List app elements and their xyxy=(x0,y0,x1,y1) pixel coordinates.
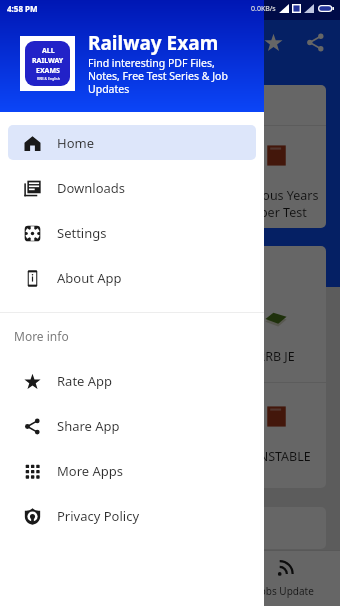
button[interactable]: Previous Years Paper Test xyxy=(10,85,326,228)
staticText: Home xyxy=(57,134,94,152)
staticText: Rate App xyxy=(57,372,113,390)
button[interactable]: Share xyxy=(294,21,336,63)
button[interactable]: Rate xyxy=(252,21,294,63)
button[interactable]: Home xyxy=(8,125,256,160)
staticText: EXAMS xyxy=(36,66,60,76)
staticText: 4:58 PM xyxy=(7,3,38,14)
staticText: RRB JE xyxy=(257,348,295,365)
staticText: Downloads xyxy=(57,179,126,197)
staticText: More Apps xyxy=(57,462,124,480)
button[interactable]: Rate App xyxy=(8,363,256,398)
button[interactable]: Settings xyxy=(8,215,256,250)
staticText: 0.0KB/s xyxy=(251,4,276,14)
staticText: More info xyxy=(14,328,69,344)
button[interactable]: Downloads xyxy=(8,170,256,205)
staticText: Railway Exam xyxy=(88,30,219,56)
staticText: Settings xyxy=(57,224,107,242)
button[interactable]: About App xyxy=(8,260,256,295)
staticText: Previous Years Paper Test xyxy=(233,187,319,220)
staticText: Jobs Update xyxy=(257,584,314,598)
staticText: CONSTABLE xyxy=(241,448,311,465)
staticText: ALL xyxy=(42,46,55,56)
button[interactable] xyxy=(10,507,326,549)
staticText: About App xyxy=(57,269,122,287)
button[interactable]: Share App xyxy=(8,408,256,443)
button[interactable]: Privacy Policy xyxy=(8,498,256,533)
button[interactable]: More Apps xyxy=(8,453,256,488)
button[interactable]: Jobs Update xyxy=(248,559,322,598)
staticText: Privacy Policy xyxy=(57,507,140,525)
staticText: Share App xyxy=(57,417,120,435)
staticText: RRB & English xyxy=(37,76,60,81)
button[interactable]: RRB JE xyxy=(10,246,326,488)
staticText: Find interesting PDF Files, Notes, Free … xyxy=(88,56,238,96)
staticText: RAILWAY xyxy=(32,56,64,66)
